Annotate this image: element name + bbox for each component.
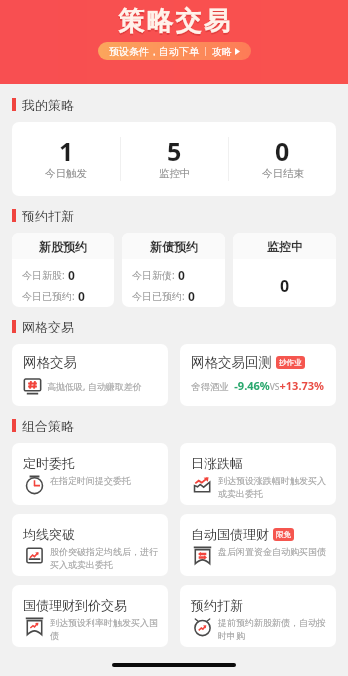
- staticText: 0: [275, 134, 290, 168]
- staticText: 预约打新: [22, 208, 74, 222]
- button[interactable]: 新股预约: [12, 233, 114, 307]
- button[interactable]: 自动国债理财: [180, 514, 336, 576]
- staticText: 日涨跌幅: [191, 455, 243, 471]
- staticText: 0: [178, 267, 185, 283]
- staticText: 新债预约: [150, 239, 198, 254]
- button[interactable]: 监控中: [233, 233, 336, 307]
- staticText: 新股预约: [39, 239, 87, 254]
- staticText: 限免: [276, 530, 291, 539]
- staticText: 今日新债:: [132, 268, 178, 282]
- staticText: 股价突破指定均线后，进行买入或卖出委托: [50, 546, 163, 571]
- staticText: 5: [167, 134, 182, 168]
- staticText: 策略交易: [117, 7, 231, 40]
- button[interactable]: 预约打新: [180, 585, 336, 647]
- staticText: 监控中: [159, 167, 191, 180]
- button[interactable]: 5: [121, 122, 228, 196]
- staticText: 盘后闲置资金自动购买国债: [218, 546, 326, 557]
- button[interactable]: 网格交易: [12, 344, 168, 406]
- staticText: 高抛低吸, 自动赚取差价: [47, 380, 142, 392]
- staticText: 预设条件，自动下单: [109, 45, 199, 58]
- button[interactable]: 1: [12, 122, 120, 196]
- button[interactable]: 新债预约: [122, 233, 225, 307]
- staticText: 今日已预约:: [22, 289, 78, 303]
- staticText: 到达预设利率时触发买入国债: [50, 617, 163, 642]
- staticText: 舍得酒业 -9.46%VS+13.73%: [191, 378, 324, 393]
- staticText: 今日触发: [45, 167, 87, 180]
- staticText: 组合策略: [22, 418, 74, 432]
- staticText: 今日结束: [262, 167, 304, 180]
- staticText: 预约打新: [191, 597, 243, 613]
- button[interactable]: 定时委托: [12, 443, 168, 505]
- staticText: 网格交易: [23, 354, 77, 371]
- staticText: 提前预约新股新债，自动按时申购: [218, 617, 331, 642]
- staticText: 监控中: [267, 239, 303, 254]
- staticText: 攻略: [212, 45, 232, 58]
- button[interactable]: 均线突破: [12, 514, 168, 576]
- button[interactable]: 网格交易回测: [180, 344, 336, 406]
- staticText: 0: [78, 288, 85, 304]
- staticText: 国债理财到价交易: [23, 597, 127, 613]
- staticText: 0: [68, 267, 75, 283]
- button[interactable]: 0: [229, 122, 336, 196]
- staticText: 我的策略: [22, 97, 74, 111]
- staticText: 均线突破: [23, 526, 75, 542]
- button[interactable]: 国债理财到价交易: [12, 585, 168, 647]
- staticText: 网格交易: [22, 319, 74, 333]
- staticText: 1: [59, 134, 74, 168]
- staticText: 到达预设涨跌幅时触发买入或卖出委托: [218, 475, 331, 500]
- staticText: 策略交易: [117, 5, 231, 38]
- staticText: 今日新股:: [22, 268, 68, 282]
- staticText: 0: [280, 275, 290, 297]
- staticText: 今日已预约:: [132, 289, 188, 303]
- staticText: 在指定时间提交委托: [50, 475, 131, 486]
- button[interactable]: 日涨跌幅: [180, 443, 336, 505]
- staticText: 网格交易回测: [191, 354, 272, 371]
- staticText: 0: [188, 288, 195, 304]
- staticText: 抄作业: [279, 358, 302, 367]
- button[interactable]: 预设条件，自动下单: [98, 42, 251, 60]
- staticText: 定时委托: [23, 455, 75, 471]
- staticText: 自动国债理财: [191, 526, 269, 542]
